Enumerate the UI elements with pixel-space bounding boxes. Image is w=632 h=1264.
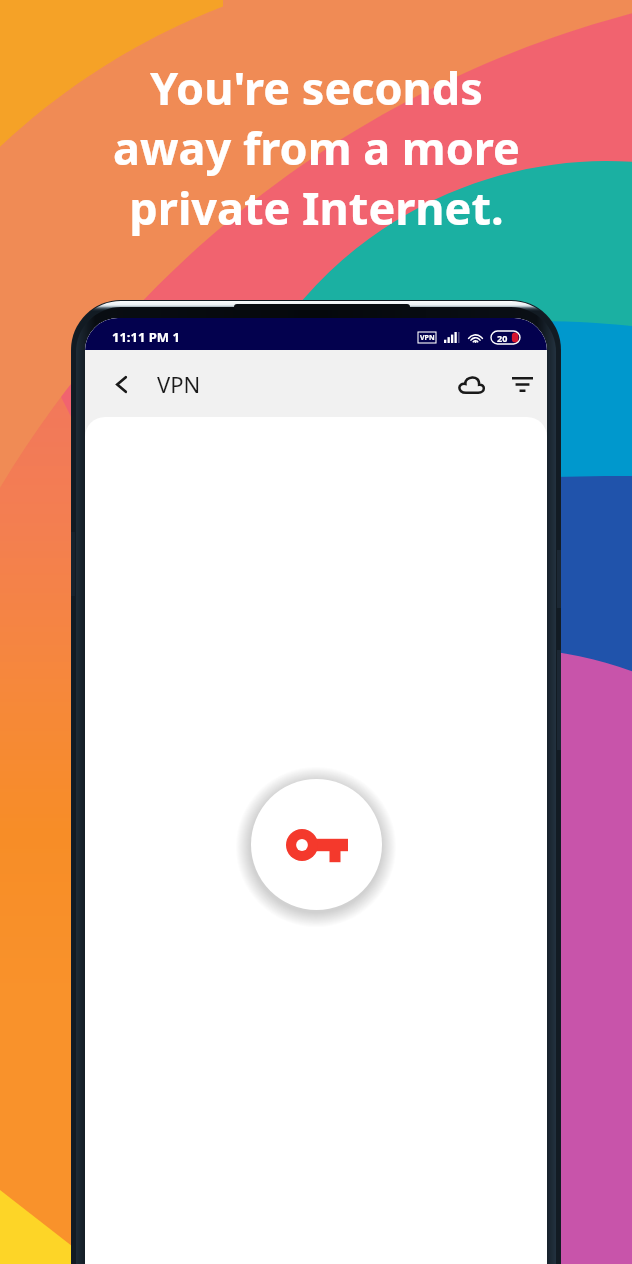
staticText: 20 (497, 332, 508, 344)
staticText: You're seconds away from a more private … (113, 57, 520, 238)
staticText: VPN (420, 333, 435, 343)
button[interactable]: Cloud (448, 361, 494, 407)
button[interactable]: VPN key (251, 779, 382, 910)
button[interactable]: Filter (500, 362, 544, 406)
staticText: 11:11 PM 1 (112, 328, 180, 346)
button[interactable]: Back (99, 362, 143, 406)
staticText: VPN (157, 369, 201, 399)
